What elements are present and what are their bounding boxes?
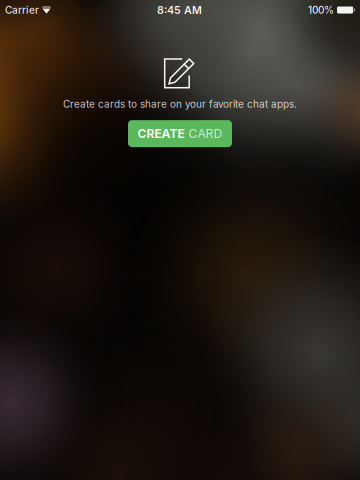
button[interactable]: CREATE xyxy=(128,120,232,147)
staticText: 100% xyxy=(308,4,334,16)
staticText: Create cards to share on your favorite c… xyxy=(63,98,297,110)
staticText: CREATE xyxy=(137,126,184,141)
staticText: Carrier xyxy=(5,4,39,16)
staticText: 8:45 AM xyxy=(157,3,202,16)
staticText: CARD xyxy=(188,126,222,141)
